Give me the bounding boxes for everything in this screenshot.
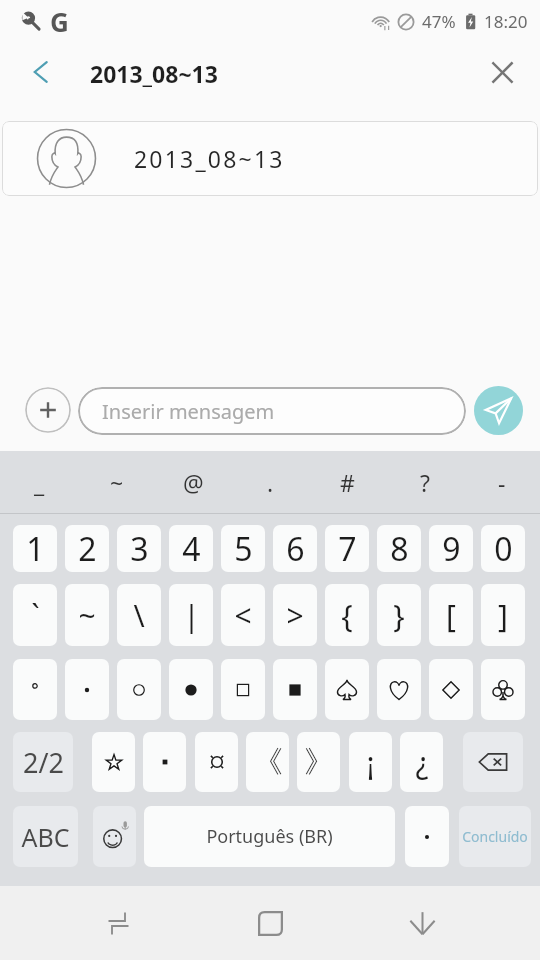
button[interactable]: 《 — [246, 732, 289, 792]
button[interactable]: . — [232, 451, 309, 513]
button[interactable] — [143, 732, 186, 792]
staticText: ] — [498, 595, 508, 636]
button[interactable] — [65, 659, 109, 720]
staticText: 6 — [286, 527, 305, 571]
button[interactable]: 3 — [117, 525, 161, 572]
staticText: 《 — [253, 743, 283, 781]
button[interactable]: 2 — [65, 525, 109, 572]
button[interactable] — [221, 659, 265, 720]
button[interactable] — [481, 659, 525, 720]
button[interactable]: [ — [429, 584, 473, 646]
button[interactable] — [13, 659, 57, 720]
button[interactable]: 1 — [13, 525, 57, 572]
staticText: 2/2 — [23, 744, 64, 781]
button[interactable]: Send — [474, 386, 523, 435]
staticText: 7 — [338, 527, 357, 571]
button[interactable] — [117, 659, 161, 720]
button[interactable]: ? — [386, 451, 463, 513]
staticText: 2 — [78, 527, 97, 571]
staticText: 2013_08~13 — [90, 58, 218, 89]
staticText: 》 — [304, 743, 334, 781]
staticText: ? — [420, 467, 430, 498]
button[interactable]: 4 — [169, 525, 213, 572]
button[interactable]: { — [325, 584, 369, 646]
button[interactable]: ` — [13, 584, 57, 646]
button[interactable]: 》 — [297, 732, 340, 792]
staticText: 18:20 — [484, 10, 528, 33]
button[interactable]: Add attachment — [25, 387, 71, 433]
button[interactable]: Concluído — [459, 806, 531, 867]
button[interactable]: - — [463, 451, 540, 513]
staticText: | — [183, 595, 200, 636]
staticText: \ — [133, 595, 145, 636]
staticText: 47% — [422, 10, 456, 33]
button[interactable]: Back — [19, 50, 63, 94]
staticText: ~ — [110, 467, 124, 498]
staticText: 9 — [442, 527, 461, 571]
button[interactable]: Close — [480, 50, 524, 94]
staticText: ~ — [78, 595, 96, 636]
staticText: 4 — [182, 527, 201, 571]
staticText: # — [340, 467, 355, 498]
staticText: _ — [34, 467, 45, 498]
button[interactable]: ¡ — [349, 732, 392, 792]
button[interactable]: 2/2 — [13, 732, 73, 792]
button[interactable] — [463, 732, 523, 792]
button[interactable] — [195, 732, 238, 792]
staticText: 1 — [26, 527, 45, 571]
button[interactable]: Inserir mensagem — [78, 387, 466, 435]
button[interactable]: 2013_08~13 — [2, 121, 538, 196]
staticText: ¿ — [415, 742, 429, 783]
button[interactable]: Recents — [82, 886, 154, 960]
staticText: ¡ — [366, 742, 375, 783]
staticText: [ — [446, 595, 456, 636]
staticText: 5 — [234, 527, 253, 571]
button[interactable]: \ — [117, 584, 161, 646]
button[interactable]: | — [169, 584, 213, 646]
button[interactable]: ABC — [13, 806, 78, 867]
staticText: G — [50, 4, 69, 39]
staticText: 8 — [390, 527, 409, 571]
staticText: < — [234, 595, 252, 636]
button[interactable] — [405, 806, 449, 867]
button[interactable]: 9 — [429, 525, 473, 572]
button[interactable] — [429, 659, 473, 720]
staticText: . — [267, 467, 274, 498]
button[interactable]: @ — [155, 451, 232, 513]
button[interactable]: 8 — [377, 525, 421, 572]
button[interactable]: _ — [0, 451, 78, 513]
button[interactable] — [273, 659, 317, 720]
staticText: 0 — [494, 527, 513, 571]
button[interactable]: } — [377, 584, 421, 646]
button[interactable]: Home — [234, 886, 306, 960]
staticText: ABC — [21, 820, 70, 854]
button[interactable] — [92, 732, 135, 792]
button[interactable]: 6 — [273, 525, 317, 572]
staticText: } — [393, 595, 405, 636]
staticText: { — [341, 595, 353, 636]
button[interactable]: Português (BR) — [144, 806, 395, 867]
staticText: @ — [183, 467, 204, 498]
staticText: > — [286, 595, 304, 636]
button[interactable]: 0 — [481, 525, 525, 572]
staticText: 2013_08~13 — [134, 143, 285, 174]
button[interactable]: ~ — [78, 451, 155, 513]
button[interactable] — [325, 659, 369, 720]
button[interactable]: 5 — [221, 525, 265, 572]
button[interactable]: > — [273, 584, 317, 646]
button[interactable]: ¿ — [400, 732, 443, 792]
staticText: 3 — [130, 527, 149, 571]
staticText: Inserir mensagem — [102, 398, 275, 425]
staticText: Português (BR) — [206, 824, 333, 849]
button[interactable]: 7 — [325, 525, 369, 572]
button[interactable] — [377, 659, 421, 720]
button[interactable]: ] — [481, 584, 525, 646]
staticText: - — [498, 467, 506, 498]
button[interactable] — [169, 659, 213, 720]
staticText: ` — [31, 595, 40, 636]
button[interactable]: # — [309, 451, 386, 513]
button[interactable]: < — [221, 584, 265, 646]
button[interactable] — [93, 806, 136, 867]
button[interactable]: Hide keyboard — [386, 886, 458, 960]
button[interactable]: ~ — [65, 584, 109, 646]
